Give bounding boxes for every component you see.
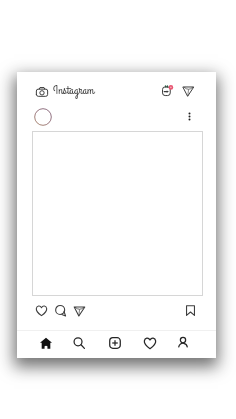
button[interactable]: Instagram (53, 82, 95, 100)
button[interactable]: IGTV (161, 85, 172, 96)
button[interactable]: More options (184, 111, 195, 122)
button[interactable]: Profile (177, 337, 189, 349)
button[interactable]: Direct messages (183, 85, 194, 96)
button[interactable]: Search (73, 337, 85, 349)
button[interactable]: Comment (55, 305, 66, 316)
button[interactable]: Camera (36, 86, 48, 98)
button[interactable]: Post photo (32, 131, 203, 296)
button[interactable]: Share (74, 305, 85, 316)
button[interactable]: Like (36, 305, 47, 316)
button[interactable]: Save (185, 305, 196, 316)
button[interactable]: Home (40, 337, 52, 349)
button[interactable]: New post (109, 337, 121, 349)
button[interactable]: Activity (144, 337, 156, 349)
button[interactable]: Your story (34, 108, 52, 126)
